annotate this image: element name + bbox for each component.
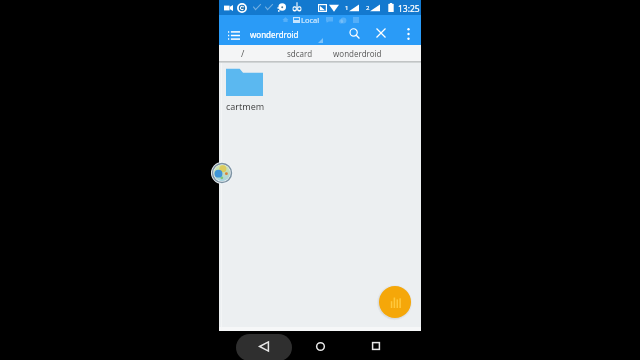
button[interactable]: More options: [398, 22, 419, 43]
staticText: Local: [301, 15, 320, 24]
button[interactable]: /: [227, 45, 259, 61]
staticText: sdcard: [287, 48, 313, 59]
button[interactable]: sdcard: [275, 45, 324, 61]
button[interactable]: Home: [308, 334, 332, 358]
button[interactable]: Search: [343, 22, 365, 44]
staticText: wonderdroid: [250, 29, 299, 40]
button[interactable]: Close: [370, 22, 392, 44]
button[interactable]: Equalizer: [379, 286, 411, 318]
staticText: 1: [345, 4, 349, 12]
button[interactable]: Open navigation drawer: [223, 24, 245, 46]
staticText: wonderdroid: [333, 48, 382, 59]
button[interactable]: Recent apps: [364, 334, 388, 358]
button[interactable]: Back: [236, 334, 292, 360]
button[interactable]: cartmem: [226, 67, 272, 112]
staticText: cartmem: [226, 100, 265, 112]
button[interactable]: Floating browser bubble: [211, 162, 233, 184]
staticText: 2: [366, 4, 370, 12]
button[interactable]: wonderdroid: [332, 45, 383, 61]
staticText: 13:25: [398, 3, 420, 15]
staticText: /: [241, 47, 245, 59]
